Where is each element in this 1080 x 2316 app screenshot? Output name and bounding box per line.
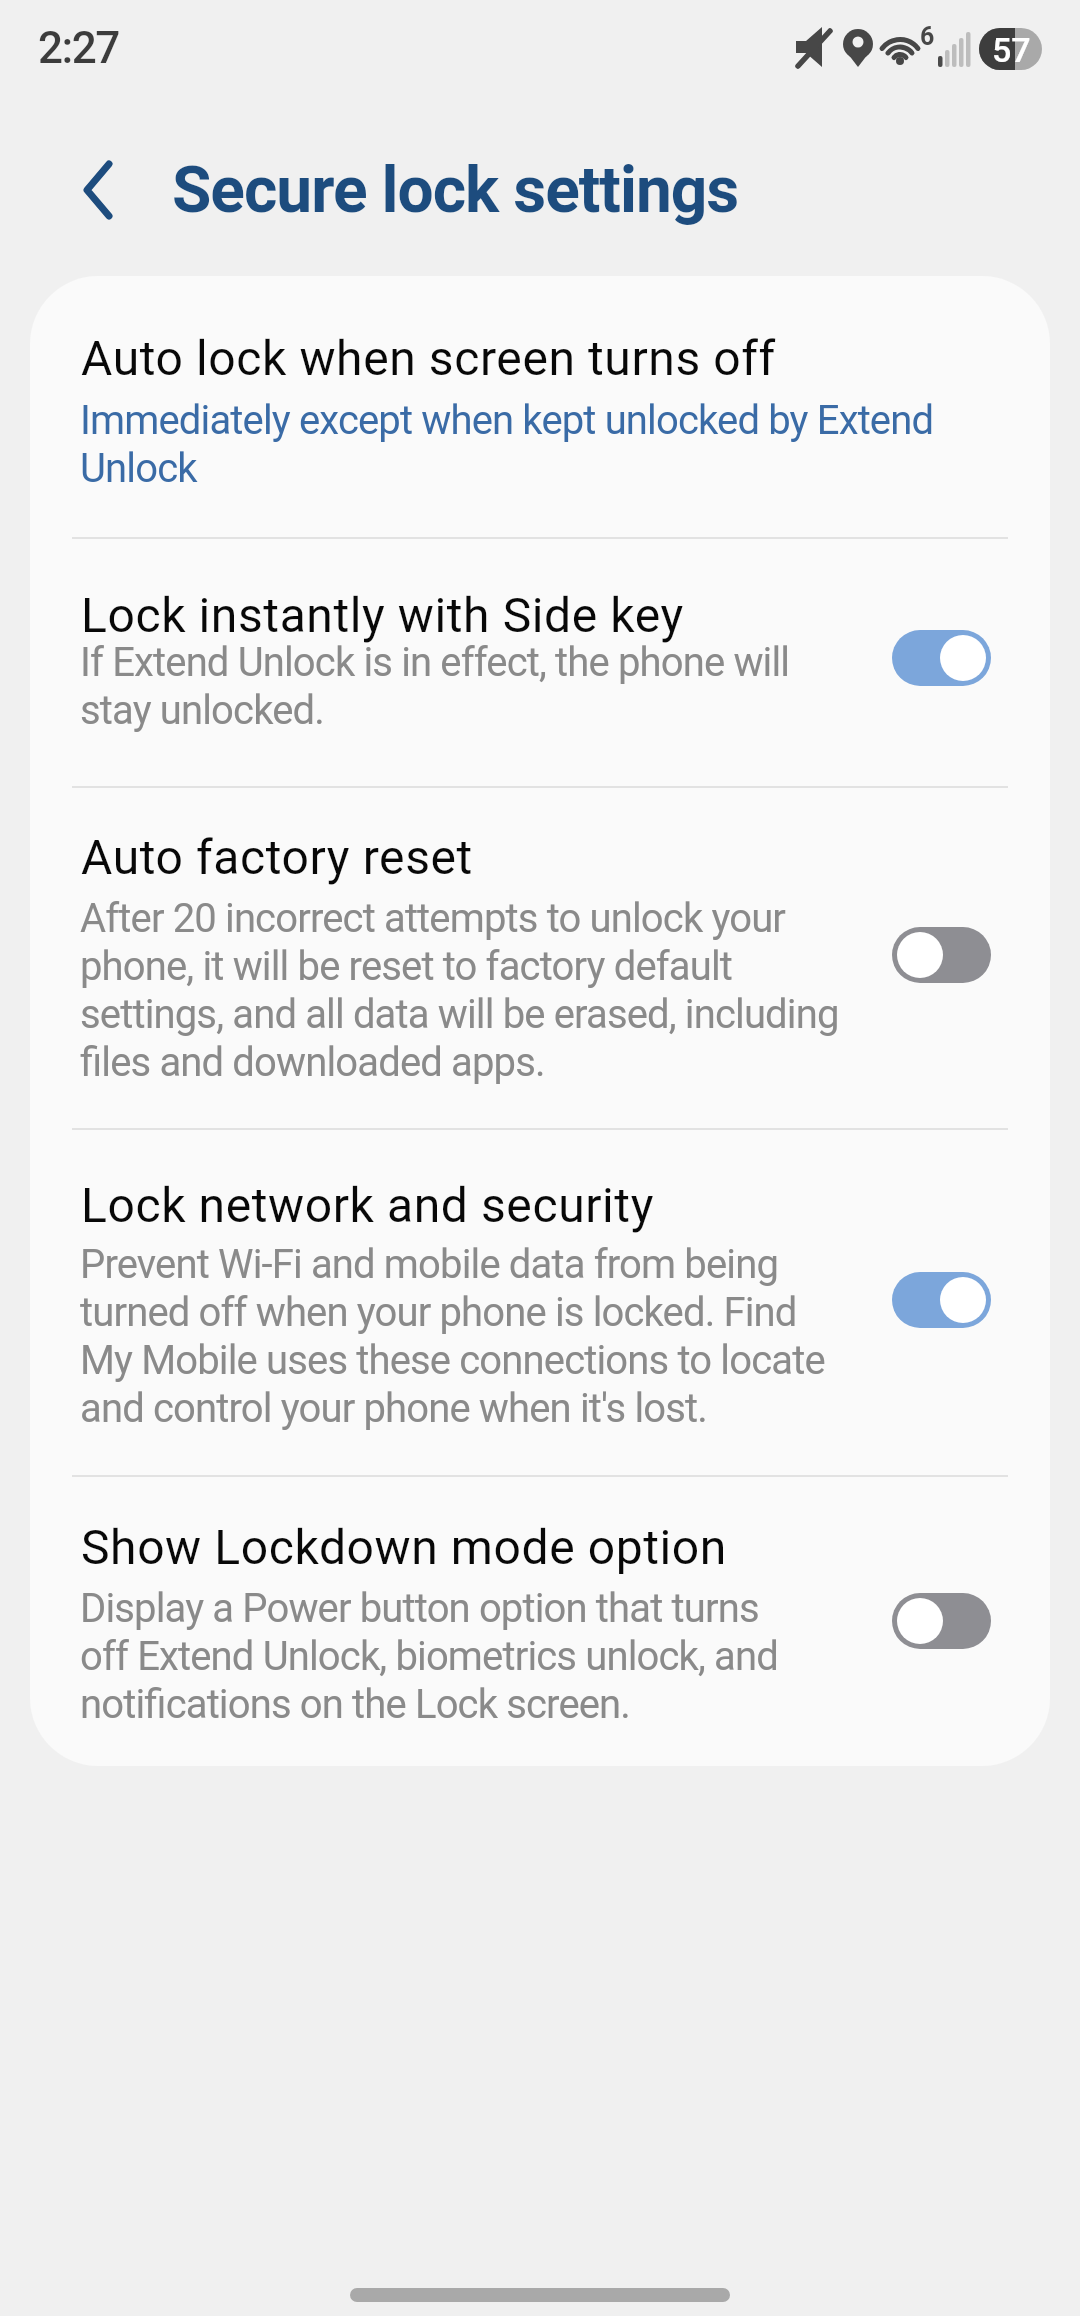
staticText: Secure lock settings xyxy=(172,153,739,228)
staticText: After 20 incorrect attempts to unlock yo… xyxy=(80,895,839,1085)
staticText: Immediately except when kept unlocked by… xyxy=(80,397,934,491)
staticText: 6 xyxy=(920,22,935,51)
staticText: 57 xyxy=(992,30,1031,70)
staticText: Auto factory reset xyxy=(81,829,473,885)
button[interactable]: Auto lock when screen turns off xyxy=(30,277,1050,536)
button[interactable]: Auto factory reset xyxy=(30,788,1050,1127)
staticText: Auto lock when screen turns off xyxy=(81,330,776,386)
button[interactable] xyxy=(64,150,134,230)
button[interactable] xyxy=(892,1593,991,1649)
staticText: Lock instantly with Side key xyxy=(81,587,684,643)
button[interactable]: Show Lockdown mode option xyxy=(30,1477,1050,1766)
button[interactable] xyxy=(892,1272,991,1328)
button[interactable]: Lock instantly with Side key xyxy=(30,539,1050,785)
button[interactable] xyxy=(892,630,991,686)
staticText: Show Lockdown mode option xyxy=(81,1519,727,1575)
staticText: Lock network and security xyxy=(81,1177,654,1233)
staticText: 2:27 xyxy=(38,22,119,74)
staticText: Display a Power button option that turns… xyxy=(80,1585,778,1727)
staticText: Prevent Wi-Fi and mobile data from being… xyxy=(80,1241,825,1431)
button[interactable] xyxy=(892,927,991,983)
staticText: If Extend Unlock is in effect, the phone… xyxy=(80,639,790,733)
button[interactable]: Lock network and security xyxy=(30,1130,1050,1474)
